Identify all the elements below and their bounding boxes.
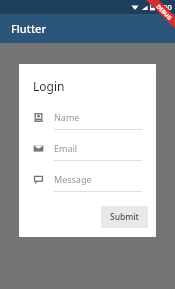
staticText: 4:00 [157,2,172,12]
button[interactable]: Message [33,173,142,192]
button[interactable]: Email [33,142,142,161]
staticText: Flutter [11,21,47,36]
staticText: Name [54,111,80,123]
staticText: DEBUG [155,3,174,21]
button[interactable]: Name [33,111,142,130]
staticText: Submit [110,211,139,223]
staticText: Email [54,142,78,154]
staticText: Login [33,78,65,94]
button[interactable]: Submit [101,206,148,228]
staticText: Message [54,173,92,185]
